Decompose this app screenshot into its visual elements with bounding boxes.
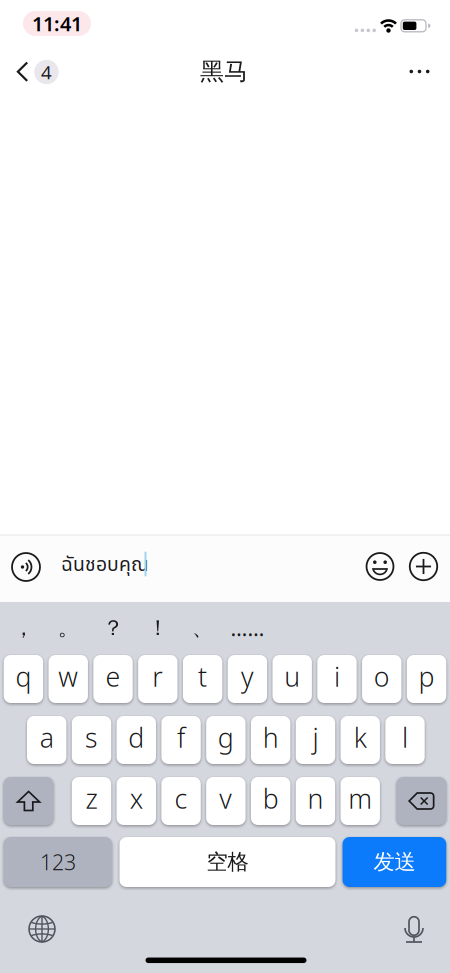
staticText: w xyxy=(58,659,78,694)
button[interactable]: Back xyxy=(0,36,70,108)
staticText: a xyxy=(40,720,54,755)
staticText: b xyxy=(263,781,279,816)
staticText: t xyxy=(198,659,207,694)
staticText: q xyxy=(15,659,31,694)
staticText: p xyxy=(419,659,435,694)
staticText: 、 xyxy=(192,615,213,641)
button[interactable]: ？ xyxy=(93,608,133,648)
button[interactable]: l xyxy=(385,716,425,764)
staticText: ？ xyxy=(102,615,123,641)
staticText: r xyxy=(152,659,163,694)
button[interactable]: Recording indicator xyxy=(23,11,91,36)
staticText: l xyxy=(402,720,408,755)
button[interactable]: c xyxy=(161,777,201,825)
staticText: 11:41 xyxy=(32,10,82,37)
button[interactable]: Shift xyxy=(4,777,53,825)
button[interactable]: 。 xyxy=(48,608,88,648)
staticText: e xyxy=(105,659,120,694)
button[interactable]: e xyxy=(93,655,133,703)
button[interactable]: 、 xyxy=(183,608,223,648)
staticText: 123 xyxy=(40,848,76,876)
staticText: k xyxy=(354,720,367,755)
staticText: g xyxy=(218,720,234,755)
button[interactable]: p xyxy=(407,655,446,703)
button[interactable]: d xyxy=(117,716,156,764)
button[interactable]: a xyxy=(27,716,66,764)
button[interactable]: Delete xyxy=(396,777,446,825)
button[interactable]: b xyxy=(251,777,290,825)
staticText: v xyxy=(219,781,232,816)
staticText: c xyxy=(175,781,188,816)
button[interactable]: h xyxy=(251,716,290,764)
button[interactable]: s xyxy=(72,716,111,764)
button[interactable]: i xyxy=(317,655,357,703)
staticText: i xyxy=(334,659,340,694)
staticText: 发送 xyxy=(373,849,415,875)
button[interactable]: Dictation xyxy=(392,908,436,952)
button[interactable]: m xyxy=(340,777,380,825)
button[interactable]: Emoji xyxy=(366,553,393,580)
button[interactable]: f xyxy=(161,716,201,764)
button[interactable]: ！ xyxy=(138,608,178,648)
staticText: z xyxy=(85,781,97,816)
staticText: m xyxy=(348,781,372,816)
staticText: n xyxy=(307,781,323,816)
button[interactable]: More xyxy=(397,49,441,93)
staticText: u xyxy=(284,659,300,694)
button[interactable]: r xyxy=(138,655,177,703)
button[interactable]: g xyxy=(206,716,246,764)
button[interactable]: 空格 xyxy=(119,837,335,887)
button[interactable]: n xyxy=(296,777,335,825)
button[interactable]: Voice input xyxy=(12,553,40,581)
button[interactable]: 发送 xyxy=(342,837,446,887)
staticText: 4 xyxy=(41,60,52,84)
staticText: s xyxy=(85,720,98,755)
staticText: o xyxy=(374,659,390,694)
staticText: d xyxy=(128,720,144,755)
button[interactable]: More functions xyxy=(410,553,437,580)
button[interactable]: 123 xyxy=(4,837,112,887)
button[interactable]: ， xyxy=(3,608,43,648)
staticText: ！ xyxy=(147,615,168,641)
button[interactable]: x xyxy=(117,777,156,825)
staticText: ， xyxy=(13,615,34,641)
button[interactable]: q xyxy=(4,655,43,703)
staticText: f xyxy=(177,720,185,755)
staticText: 空格 xyxy=(206,849,248,875)
button[interactable]: j xyxy=(296,716,335,764)
staticText: 。 xyxy=(58,615,79,641)
button[interactable]: …… xyxy=(227,608,267,648)
button[interactable]: z xyxy=(72,777,111,825)
staticText: j xyxy=(312,720,318,755)
staticText: y xyxy=(241,659,254,694)
button[interactable]: o xyxy=(362,655,401,703)
button[interactable]: Next keyboard xyxy=(20,907,64,951)
button[interactable]: ฉันชอบคุณ xyxy=(48,543,352,589)
staticText: x xyxy=(130,781,143,816)
button[interactable]: y xyxy=(228,655,267,703)
staticText: ฉันชอบคุณ xyxy=(61,550,149,580)
button[interactable]: w xyxy=(48,655,88,703)
button[interactable]: k xyxy=(340,716,380,764)
button[interactable]: u xyxy=(272,655,312,703)
button[interactable]: v xyxy=(206,777,246,825)
staticText: 黑马 xyxy=(200,57,248,86)
staticText: …… xyxy=(230,614,264,642)
staticText: h xyxy=(263,720,279,755)
button[interactable]: t xyxy=(183,655,222,703)
